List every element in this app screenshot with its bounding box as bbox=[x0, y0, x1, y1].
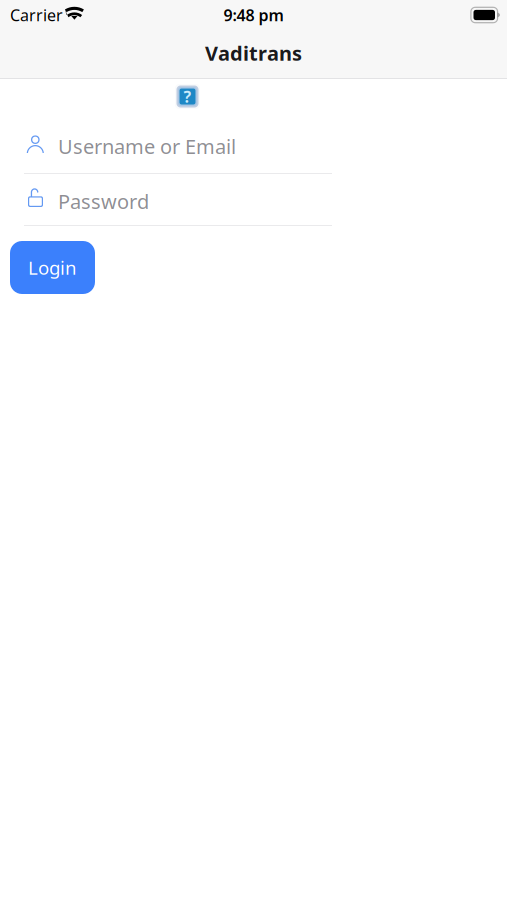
staticText: Login bbox=[28, 255, 77, 280]
staticText: Vaditrans bbox=[205, 40, 302, 66]
button[interactable]: Login bbox=[10, 241, 95, 294]
button[interactable]: Username or Email bbox=[0, 130, 507, 160]
staticText: Carrier bbox=[10, 4, 63, 26]
staticText: Password bbox=[58, 188, 149, 215]
staticText: ? bbox=[183, 86, 191, 107]
staticText: Username or Email bbox=[58, 133, 236, 160]
staticText: 9:48 pm bbox=[223, 4, 283, 26]
button[interactable]: Password bbox=[0, 188, 507, 215]
